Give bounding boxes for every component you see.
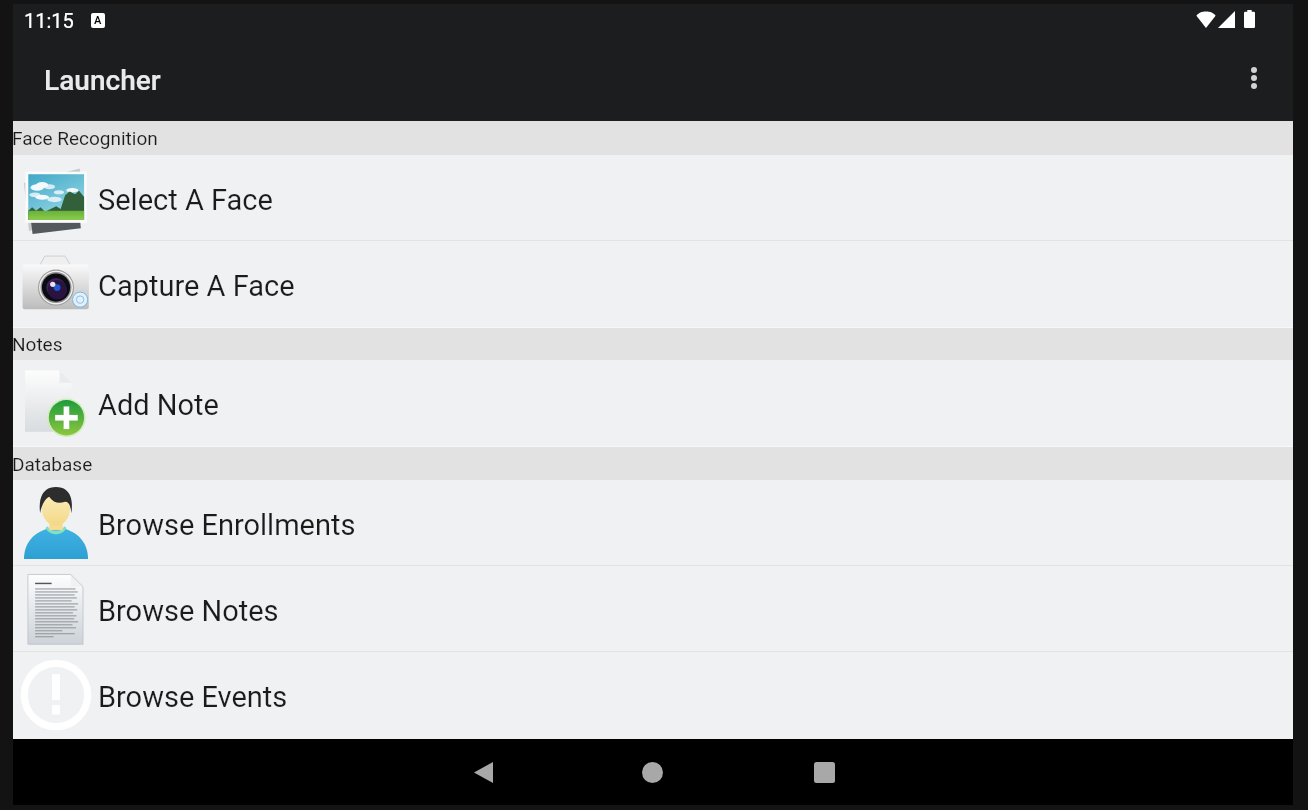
button[interactable]: Select A Face bbox=[13, 155, 1293, 241]
staticText: Database bbox=[12, 453, 93, 475]
button[interactable]: Back bbox=[443, 739, 523, 805]
button[interactable]: More options bbox=[1237, 61, 1271, 95]
staticText: 11:15 bbox=[24, 9, 74, 32]
button[interactable]: Browse Events bbox=[13, 652, 1293, 738]
button[interactable]: Recent apps bbox=[784, 739, 864, 805]
staticText: Browse Notes bbox=[98, 594, 279, 628]
staticText: A bbox=[94, 14, 102, 27]
button[interactable]: Add Note bbox=[13, 360, 1293, 446]
button[interactable]: Capture A Face bbox=[13, 241, 1293, 327]
staticText: Launcher bbox=[44, 64, 161, 97]
button[interactable]: Home bbox=[612, 739, 692, 805]
button[interactable]: Browse Enrollments bbox=[13, 480, 1293, 566]
staticText: Add Note bbox=[98, 388, 219, 422]
staticText: Browse Enrollments bbox=[98, 508, 356, 542]
staticText: Browse Events bbox=[98, 680, 288, 714]
staticText: Select A Face bbox=[98, 183, 273, 217]
button[interactable]: Browse Notes bbox=[13, 566, 1293, 652]
staticText: Notes bbox=[12, 333, 63, 355]
staticText: Face Recognition bbox=[12, 127, 158, 149]
staticText: Capture A Face bbox=[98, 269, 295, 303]
